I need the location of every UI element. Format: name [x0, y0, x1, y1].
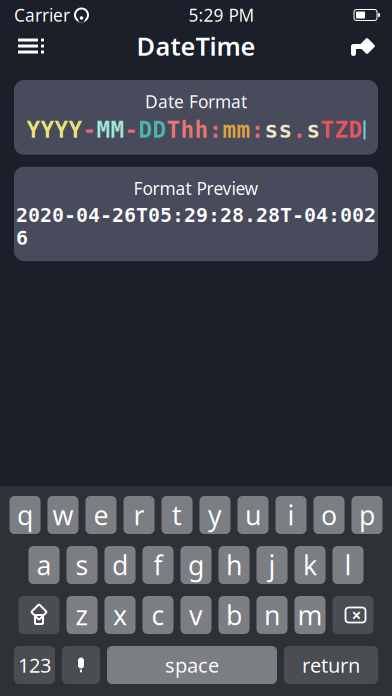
staticText: c	[151, 597, 164, 633]
button[interactable]: return	[284, 646, 378, 684]
button[interactable]: h	[218, 546, 249, 584]
staticText: h	[226, 547, 242, 583]
staticText: .	[292, 117, 306, 143]
button[interactable]: Menu	[6, 29, 56, 63]
staticText: p	[359, 497, 375, 533]
button[interactable]: v	[180, 596, 211, 634]
staticText: i	[287, 497, 294, 533]
staticText: l	[344, 547, 351, 583]
button[interactable]: y	[199, 496, 230, 534]
button[interactable]: Shift	[18, 596, 59, 634]
button[interactable]: o	[313, 496, 344, 534]
staticText: z	[75, 597, 88, 633]
staticText: YYYY	[26, 117, 82, 143]
button[interactable]: z	[66, 596, 97, 634]
staticText: :	[208, 117, 222, 143]
staticText: return	[302, 652, 360, 678]
staticText: TZD	[320, 117, 362, 143]
staticText: :	[250, 117, 264, 143]
staticText: a	[36, 547, 51, 583]
button[interactable]: m	[294, 596, 325, 634]
button[interactable]: w	[47, 496, 78, 534]
button[interactable]: r	[123, 496, 154, 534]
staticText: t	[172, 497, 182, 533]
staticText: 2020-04-26T05:29:28.28T-04:0026	[16, 204, 376, 249]
staticText: q	[17, 497, 33, 533]
staticText: s	[75, 547, 88, 583]
button[interactable]: Share	[336, 27, 386, 65]
staticText: r	[133, 497, 144, 533]
button[interactable]: i	[275, 496, 306, 534]
staticText: n	[264, 597, 280, 633]
staticText: -	[82, 117, 96, 143]
staticText: x	[113, 597, 127, 633]
staticText: Format Preview	[133, 177, 258, 200]
button[interactable]: e	[85, 496, 116, 534]
staticText: j	[268, 547, 275, 583]
button[interactable]: p	[351, 496, 382, 534]
button[interactable]: x	[104, 596, 135, 634]
staticText: v	[189, 597, 203, 633]
button[interactable]: k	[294, 546, 325, 584]
button[interactable]: a	[28, 546, 59, 584]
button[interactable]: g	[180, 546, 211, 584]
staticText: y	[208, 497, 222, 533]
button[interactable]: c	[142, 596, 173, 634]
staticText: -	[124, 117, 138, 143]
staticText: g	[188, 547, 204, 583]
button[interactable]: d	[104, 546, 135, 584]
staticText: DD	[138, 117, 166, 143]
staticText: f	[153, 547, 162, 583]
staticText: Date Format	[145, 90, 247, 113]
staticText: m	[297, 597, 322, 633]
staticText: w	[52, 497, 73, 533]
staticText: s	[306, 117, 320, 143]
staticText: d	[112, 547, 128, 583]
staticText: space	[165, 652, 219, 678]
staticText: ss	[264, 117, 292, 143]
button[interactable]: t	[161, 496, 192, 534]
staticText: MM	[96, 117, 124, 143]
button[interactable]: Delete	[332, 596, 373, 634]
staticText: DateTime	[136, 29, 255, 63]
staticText: Thh	[166, 117, 208, 143]
staticText: mm	[222, 117, 250, 143]
staticText: 5:29 PM	[188, 3, 254, 26]
button[interactable]: f	[142, 546, 173, 584]
staticText: k	[303, 547, 317, 583]
staticText: b	[226, 597, 242, 633]
button[interactable]: 123	[14, 646, 55, 684]
button[interactable]: b	[218, 596, 249, 634]
staticText: Carrier	[14, 3, 70, 26]
staticText: 123	[18, 652, 51, 678]
button[interactable]: Dictation	[62, 646, 100, 684]
button[interactable]: s	[66, 546, 97, 584]
button[interactable]: u	[237, 496, 268, 534]
button[interactable]: j	[256, 546, 287, 584]
staticText: u	[245, 497, 261, 533]
button[interactable]: q	[9, 496, 40, 534]
staticText: ×	[351, 603, 361, 626]
button[interactable]: n	[256, 596, 287, 634]
staticText: e	[93, 497, 108, 533]
button[interactable]: space	[107, 646, 277, 684]
button[interactable]: l	[332, 546, 363, 584]
staticText: o	[321, 497, 337, 533]
